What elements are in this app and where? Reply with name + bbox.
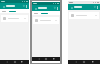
button[interactable]: Back: [6, 61, 8, 63]
button[interactable]: [69, 12, 99, 19]
button[interactable]: Search: [23, 5, 25, 7]
button[interactable]: [34, 13, 38, 14]
button[interactable]: [41, 13, 48, 14]
button[interactable]: Recents: [21, 61, 23, 63]
button[interactable]: Search: [54, 7, 56, 9]
button[interactable]: Navigation menu: [2, 5, 5, 8]
button[interactable]: Navigation menu: [70, 6, 73, 9]
button[interactable]: [9, 11, 16, 12]
button[interactable]: [1, 15, 28, 22]
button[interactable]: [2, 11, 6, 12]
button[interactable]: Back: [38, 58, 40, 60]
button[interactable]: Back: [75, 61, 77, 63]
button[interactable]: Navigation menu: [34, 7, 37, 10]
button[interactable]: Search: [94, 6, 96, 8]
button[interactable]: Recents: [53, 58, 55, 60]
button[interactable]: [33, 17, 59, 24]
button[interactable]: Recents: [92, 61, 94, 63]
